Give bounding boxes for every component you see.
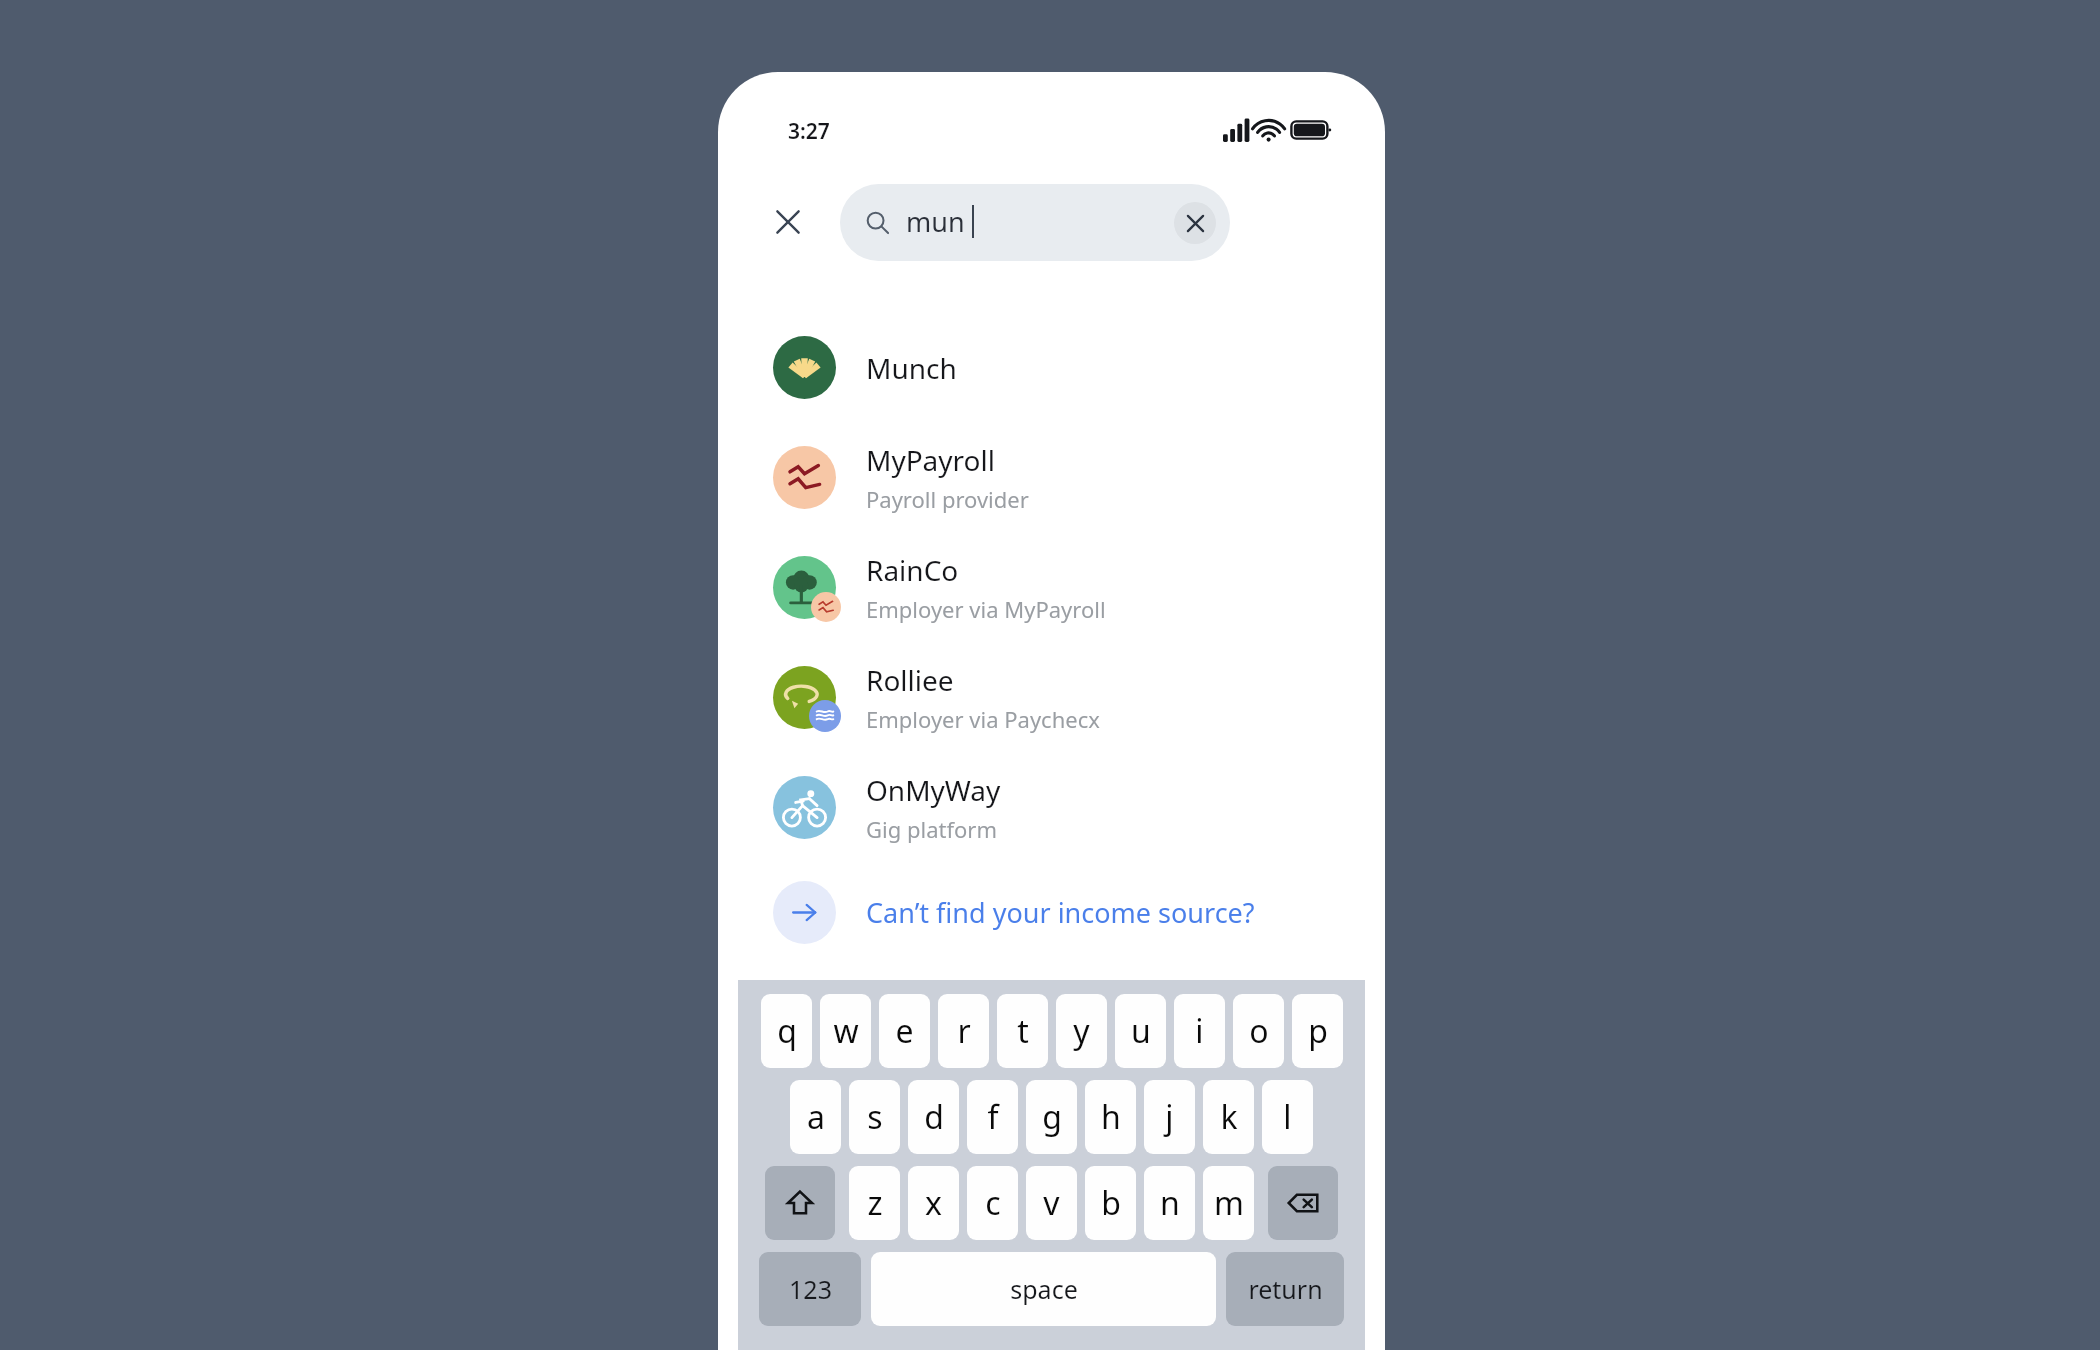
staticText: p bbox=[1308, 1009, 1328, 1053]
button[interactable]: RainCo bbox=[758, 535, 1345, 640]
staticText: x bbox=[925, 1181, 942, 1225]
button[interactable]: r bbox=[938, 994, 989, 1068]
staticText: i bbox=[1195, 1009, 1204, 1053]
button[interactable]: k bbox=[1203, 1080, 1254, 1154]
button[interactable]: space bbox=[871, 1252, 1216, 1326]
button[interactable]: g bbox=[1026, 1080, 1077, 1154]
button[interactable]: n bbox=[1144, 1166, 1195, 1240]
staticText: b bbox=[1101, 1181, 1121, 1225]
button[interactable]: OnMyWay bbox=[758, 755, 1345, 860]
button[interactable]: 123 bbox=[759, 1252, 861, 1326]
staticText: r bbox=[957, 1009, 971, 1053]
button[interactable]: c bbox=[967, 1166, 1018, 1240]
staticText: y bbox=[1073, 1009, 1090, 1053]
staticText: h bbox=[1101, 1095, 1121, 1139]
staticText: s bbox=[867, 1095, 883, 1139]
button[interactable]: i bbox=[1174, 994, 1225, 1068]
button[interactable]: p bbox=[1292, 994, 1343, 1068]
button[interactable]: Clear text bbox=[1174, 202, 1216, 244]
button[interactable]: w bbox=[820, 994, 871, 1068]
staticText: Rolliee bbox=[866, 661, 954, 699]
staticText: n bbox=[1160, 1181, 1180, 1225]
button[interactable]: o bbox=[1233, 994, 1284, 1068]
staticText: g bbox=[1042, 1095, 1062, 1139]
button[interactable]: m bbox=[1203, 1166, 1254, 1240]
button[interactable]: return bbox=[1226, 1252, 1344, 1326]
staticText: RainCo bbox=[866, 551, 959, 589]
button[interactable]: t bbox=[997, 994, 1048, 1068]
button[interactable]: l bbox=[1262, 1080, 1313, 1154]
staticText: Gig platform bbox=[866, 814, 997, 844]
button[interactable]: Rolliee bbox=[758, 645, 1345, 750]
button[interactable]: Munch bbox=[758, 315, 1345, 420]
staticText: e bbox=[895, 1009, 914, 1053]
staticText: l bbox=[1283, 1095, 1292, 1139]
button[interactable]: z bbox=[849, 1166, 900, 1240]
button[interactable]: b bbox=[1085, 1166, 1136, 1240]
button[interactable]: Can’t find your income source? bbox=[758, 865, 1345, 960]
staticText: u bbox=[1131, 1009, 1151, 1053]
staticText: Employer via Paychecx bbox=[866, 704, 1100, 734]
button[interactable]: u bbox=[1115, 994, 1166, 1068]
button[interactable]: d bbox=[908, 1080, 959, 1154]
staticText: space bbox=[1010, 1272, 1078, 1306]
button[interactable]: a bbox=[790, 1080, 841, 1154]
staticText: v bbox=[1043, 1181, 1060, 1225]
button[interactable]: s bbox=[849, 1080, 900, 1154]
staticText: Payroll provider bbox=[866, 484, 1029, 514]
button[interactable]: j bbox=[1144, 1080, 1195, 1154]
button[interactable]: h bbox=[1085, 1080, 1136, 1154]
staticText: Can’t find your income source? bbox=[866, 894, 1255, 931]
staticText: k bbox=[1220, 1095, 1238, 1139]
staticText: d bbox=[924, 1095, 944, 1139]
staticText: mun bbox=[906, 203, 965, 240]
button[interactable]: mun bbox=[840, 184, 1230, 261]
staticText: 3:27 bbox=[788, 117, 830, 146]
staticText: 123 bbox=[789, 1272, 832, 1306]
button[interactable]: Backspace bbox=[1268, 1166, 1338, 1240]
button[interactable]: MyPayroll bbox=[758, 425, 1345, 530]
button[interactable]: e bbox=[879, 994, 930, 1068]
button[interactable]: v bbox=[1026, 1166, 1077, 1240]
button[interactable]: Close bbox=[758, 192, 818, 252]
staticText: z bbox=[867, 1181, 883, 1225]
staticText: w bbox=[833, 1009, 859, 1053]
button[interactable]: f bbox=[967, 1080, 1018, 1154]
staticText: c bbox=[985, 1181, 1001, 1225]
button[interactable]: q bbox=[761, 994, 812, 1068]
staticText: Employer via MyPayroll bbox=[866, 594, 1106, 624]
staticText: return bbox=[1248, 1272, 1323, 1306]
staticText: o bbox=[1249, 1009, 1269, 1053]
staticText: MyPayroll bbox=[866, 441, 995, 479]
staticText: t bbox=[1017, 1009, 1029, 1053]
staticText: a bbox=[807, 1095, 825, 1139]
button[interactable]: y bbox=[1056, 994, 1107, 1068]
staticText: m bbox=[1214, 1181, 1244, 1225]
button[interactable]: Shift bbox=[765, 1166, 835, 1240]
staticText: q bbox=[777, 1009, 797, 1053]
staticText: OnMyWay bbox=[866, 771, 1001, 809]
staticText: j bbox=[1165, 1095, 1174, 1139]
staticText: Munch bbox=[866, 349, 957, 387]
staticText: f bbox=[987, 1095, 999, 1139]
button[interactable]: x bbox=[908, 1166, 959, 1240]
